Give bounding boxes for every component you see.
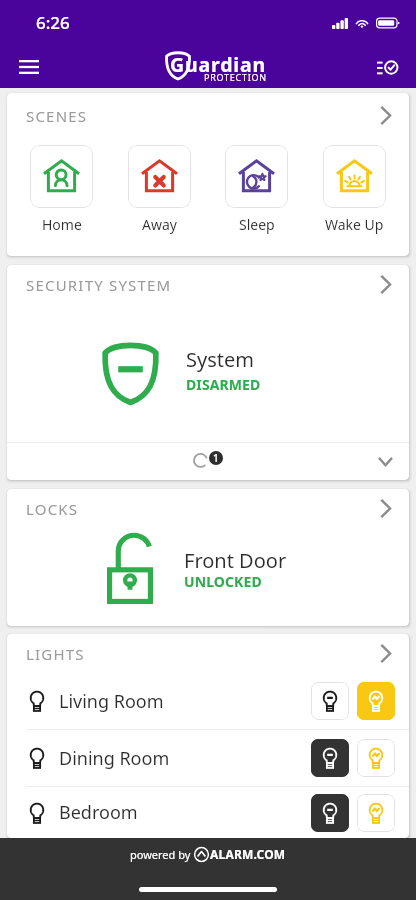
- button[interactable]: Turn on Dining Room: [357, 739, 395, 777]
- staticText: SECURITY SYSTEM: [26, 275, 172, 295]
- button[interactable]: Open navigation menu: [10, 48, 48, 86]
- button[interactable]: SECURITY SYSTEM: [7, 265, 409, 304]
- staticText: Bedroom: [59, 800, 138, 825]
- staticText: 1: [213, 451, 219, 465]
- staticText: SCENES: [26, 106, 88, 126]
- button[interactable]: Wake Up: [323, 145, 386, 234]
- button[interactable]: Activity checklist: [368, 48, 406, 86]
- button[interactable]: Home: [30, 145, 93, 234]
- staticText: ALARM.COM: [210, 846, 286, 862]
- staticText: LOCKS: [26, 499, 79, 519]
- button[interactable]: Away: [128, 145, 191, 234]
- staticText: LIGHTS: [26, 644, 85, 664]
- button[interactable]: LOCKS: [7, 489, 409, 528]
- staticText: powered by: [130, 847, 194, 862]
- button[interactable]: Turn on Living Room: [357, 682, 395, 720]
- button[interactable]: Turn off Living Room: [311, 682, 349, 720]
- staticText: Dining Room: [59, 746, 170, 771]
- button[interactable]: Turn off Bedroom: [311, 794, 349, 832]
- button[interactable]: Turn off Dining Room: [311, 739, 349, 777]
- button[interactable]: Turn on Bedroom: [357, 794, 395, 832]
- staticText: UNLOCKED: [184, 572, 262, 591]
- button[interactable]: System: [7, 304, 409, 442]
- staticText: Living Room: [59, 689, 164, 714]
- staticText: System: [186, 346, 254, 373]
- staticText: 6:26: [36, 11, 70, 34]
- staticText: Sleep: [239, 215, 275, 234]
- staticText: Away: [142, 215, 177, 234]
- button[interactable]: SCENES: [7, 93, 409, 138]
- button[interactable]: Front Door: [7, 528, 409, 626]
- staticText: Wake Up: [325, 215, 384, 234]
- button[interactable]: Sleep: [225, 145, 288, 234]
- button[interactable]: 1: [7, 443, 409, 480]
- button[interactable]: LIGHTS: [7, 634, 409, 673]
- staticText: Front Door: [184, 547, 287, 574]
- staticText: Home: [42, 215, 82, 234]
- staticText: DISARMED: [186, 375, 261, 394]
- staticText: PROTECTION: [204, 71, 267, 83]
- staticText: Guardian: [170, 51, 267, 78]
